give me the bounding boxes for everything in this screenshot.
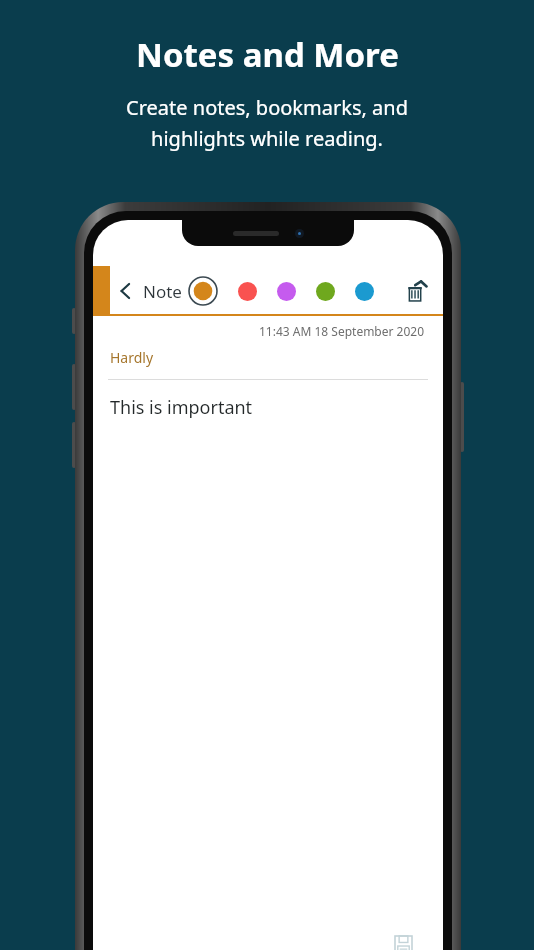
- button[interactable]: Save note: [389, 930, 417, 950]
- button[interactable]: Orange highlight: [188, 276, 218, 306]
- staticText: 11:43 AM 18 September 2020: [259, 323, 425, 339]
- button[interactable]: Blue highlight: [355, 282, 374, 301]
- staticText: Hardly: [110, 348, 154, 367]
- button[interactable]: Back: [115, 280, 137, 302]
- staticText: highlights while reading.: [151, 125, 383, 152]
- button[interactable]: Red highlight: [238, 282, 257, 301]
- staticText: This is important: [110, 395, 253, 420]
- button[interactable]: Delete note: [401, 276, 431, 306]
- button[interactable]: Purple highlight: [277, 282, 296, 301]
- staticText: Note: [143, 280, 182, 303]
- button[interactable]: Green highlight: [316, 282, 335, 301]
- staticText: Notes and More: [136, 32, 399, 77]
- staticText: Create notes, bookmarks, and: [126, 94, 408, 121]
